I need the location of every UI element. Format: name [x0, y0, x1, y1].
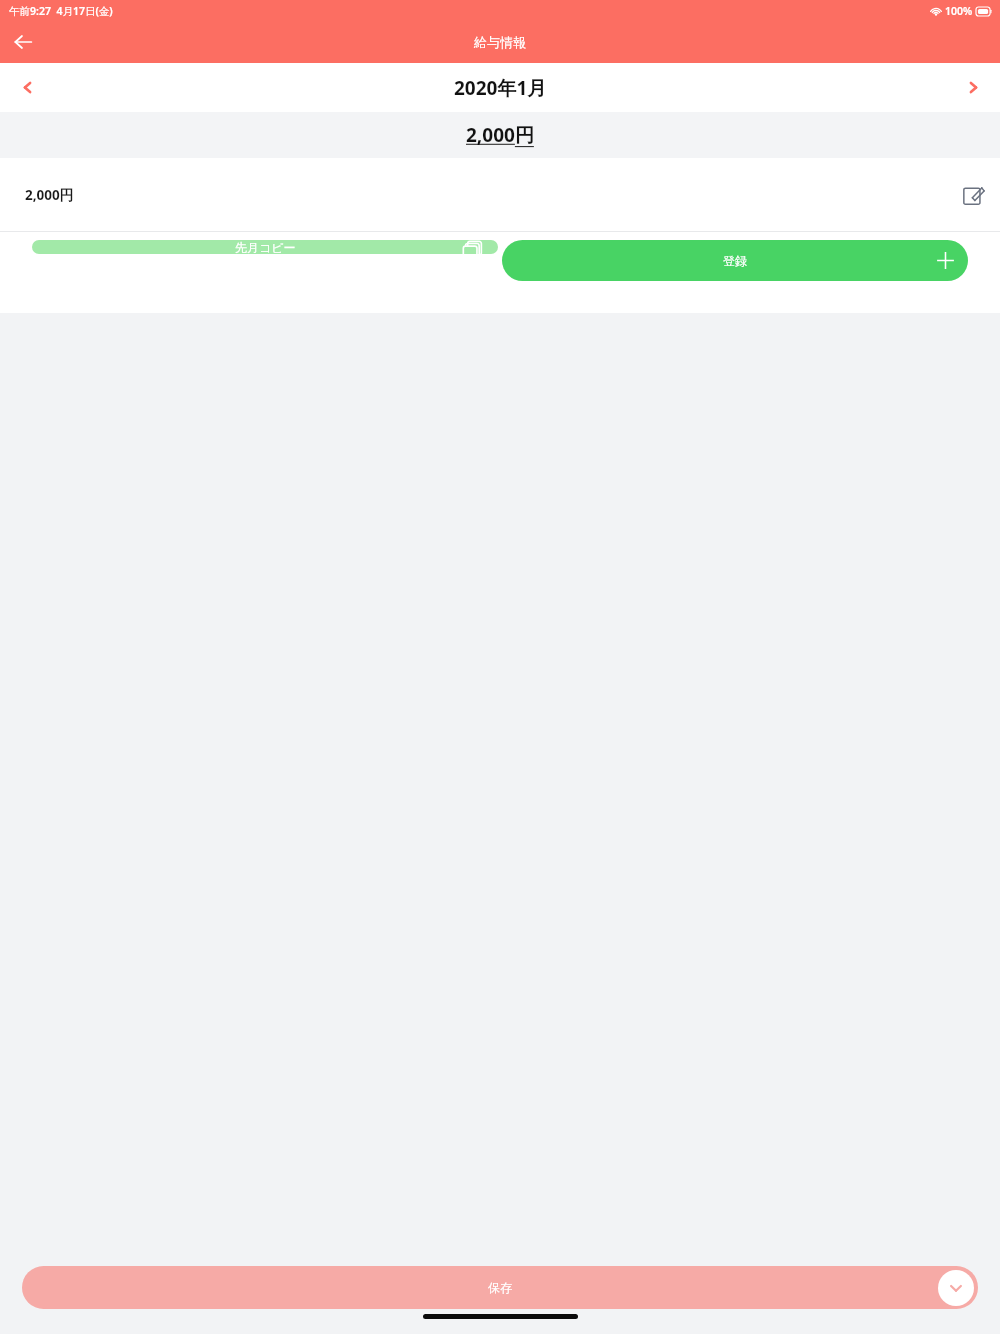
- staticText: 登録: [723, 253, 747, 268]
- button[interactable]: Previous month: [0, 63, 54, 112]
- button[interactable]: Edit: [946, 168, 1000, 222]
- staticText: 先月コピー: [235, 240, 296, 254]
- staticText: 2,000円: [25, 186, 74, 204]
- staticText: 午前9:27 4月17日(金): [9, 4, 113, 18]
- staticText: 給与情報: [474, 34, 526, 50]
- button[interactable]: Back: [0, 21, 46, 63]
- button[interactable]: 先月コピー: [32, 240, 498, 254]
- staticText: 2020年1月: [454, 75, 547, 101]
- button[interactable]: 登録: [502, 240, 968, 281]
- staticText: 100%: [945, 4, 973, 18]
- staticText: 2,000円: [466, 122, 534, 148]
- button[interactable]: Expand: [938, 1270, 974, 1306]
- button[interactable]: Next month: [946, 63, 1000, 112]
- button[interactable]: 保存: [22, 1266, 978, 1309]
- staticText: 保存: [488, 1280, 512, 1295]
